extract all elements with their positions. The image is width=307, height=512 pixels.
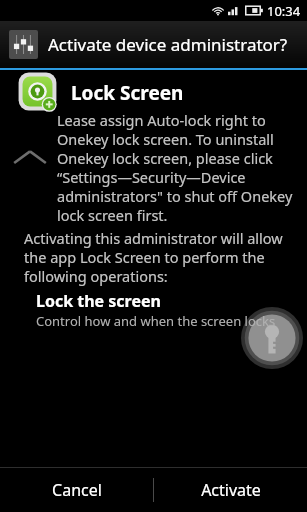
staticText: Cancel bbox=[52, 479, 102, 501]
other: Scroll up bbox=[12, 147, 48, 167]
staticText: Control how and when the screen locks bbox=[36, 312, 276, 330]
button[interactable]: Cancel bbox=[0, 468, 153, 512]
staticText: Lease assign Auto-lock right to Onekey l… bbox=[57, 110, 293, 225]
staticText: Lock the screen bbox=[36, 290, 161, 312]
staticText: 10:34 bbox=[267, 2, 301, 20]
staticText: Lock Screen bbox=[71, 80, 184, 106]
staticText: Activating this administrator will allow… bbox=[24, 228, 286, 286]
button[interactable]: Activate bbox=[154, 468, 307, 512]
staticText: Activate device administrator? bbox=[48, 33, 288, 56]
staticText: Activate bbox=[201, 479, 261, 501]
